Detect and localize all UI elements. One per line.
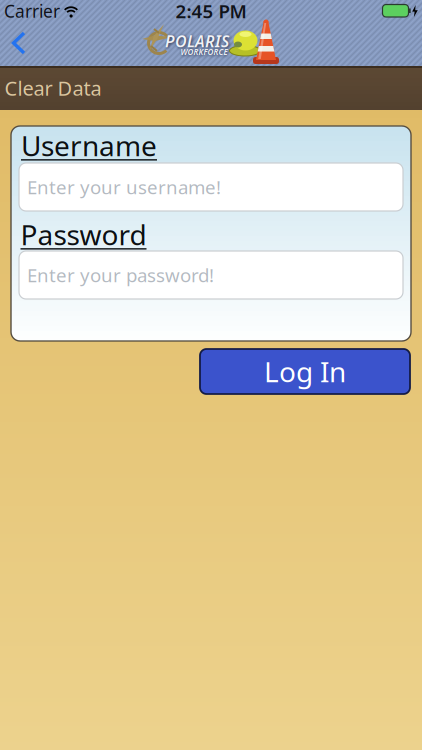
- staticText: Carrier: [4, 0, 60, 22]
- staticText: WORKFORCE: [180, 47, 227, 57]
- button[interactable]: Enter your password!: [19, 251, 403, 299]
- staticText: Clear Data: [4, 75, 101, 101]
- staticText: Enter your password!: [27, 263, 214, 287]
- staticText: Password: [20, 216, 146, 253]
- staticText: Log In: [264, 353, 346, 390]
- staticText: Username: [21, 127, 157, 164]
- button[interactable]: Enter your username!: [19, 163, 403, 211]
- staticText: Enter your username!: [27, 175, 221, 199]
- button[interactable]: Clear Data: [0, 66, 422, 110]
- button[interactable]: Back: [4, 28, 34, 58]
- staticText: 2:45 PM: [175, 0, 246, 23]
- staticText: POLARIS: [165, 30, 229, 52]
- button[interactable]: Log In: [200, 349, 410, 394]
